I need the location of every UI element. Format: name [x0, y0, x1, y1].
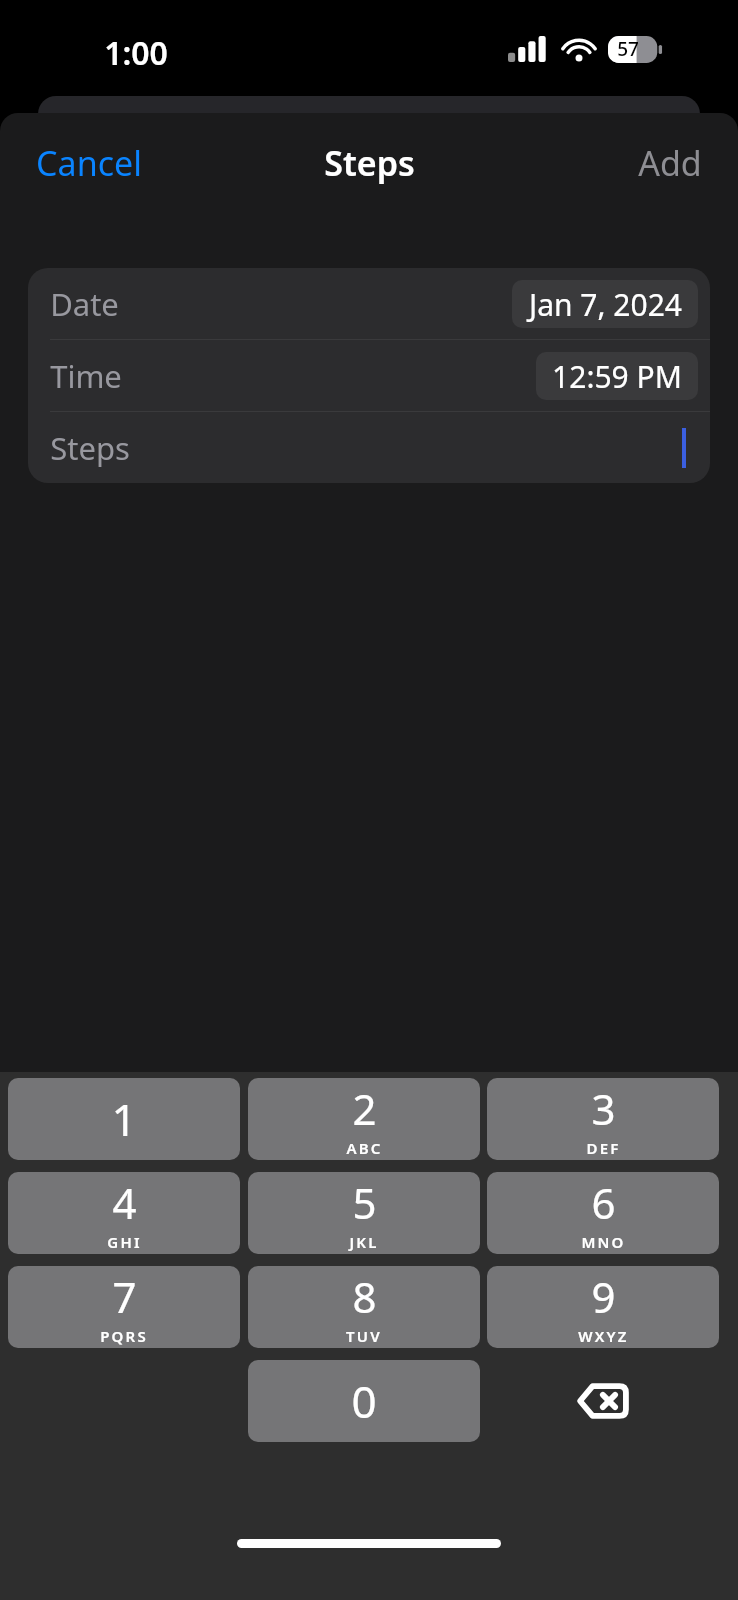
staticText: WXYZ [578, 1326, 629, 1346]
staticText: 0 [351, 1371, 377, 1431]
button[interactable]: 3 [487, 1078, 719, 1160]
staticText: 8 [352, 1268, 377, 1325]
staticText: ABC [346, 1138, 383, 1158]
staticText: 12:59 PM [552, 356, 682, 397]
staticText: 9 [591, 1268, 616, 1325]
button[interactable]: Steps [28, 412, 710, 483]
staticText: 7 [112, 1268, 137, 1325]
staticText: 1 [111, 1089, 137, 1149]
button[interactable]: 8 [248, 1266, 480, 1348]
button[interactable]: 5 [248, 1172, 480, 1254]
staticText: Steps [324, 140, 415, 186]
staticText: TUV [346, 1326, 382, 1346]
staticText: Steps [50, 427, 130, 469]
staticText: 57 [617, 36, 639, 62]
staticText: 2 [352, 1080, 377, 1137]
button[interactable]: Time [28, 340, 710, 412]
button[interactable]: 9 [487, 1266, 719, 1348]
staticText: DEF [586, 1138, 621, 1158]
button[interactable]: Add [602, 124, 738, 202]
button[interactable]: 4 [8, 1172, 240, 1254]
button[interactable]: 12:59 PM [536, 352, 698, 400]
staticText: 5 [352, 1174, 377, 1231]
staticText: 6 [591, 1174, 616, 1231]
staticText: 4 [112, 1174, 137, 1231]
staticText: 1:00 [104, 31, 168, 75]
button[interactable]: Date [28, 268, 710, 340]
staticText: Cancel [36, 140, 142, 186]
staticText: PQRS [100, 1326, 148, 1346]
button[interactable]: Cancel [0, 124, 178, 202]
button[interactable]: 6 [487, 1172, 719, 1254]
staticText: Date [50, 283, 119, 325]
staticText: 3 [591, 1080, 616, 1137]
staticText: Add [638, 140, 702, 186]
button[interactable]: 0 [248, 1360, 480, 1442]
staticText: Time [50, 355, 122, 397]
button[interactable]: 1 [8, 1078, 240, 1160]
button[interactable]: Jan 7, 2024 [512, 280, 698, 328]
button[interactable]: Delete [487, 1360, 719, 1442]
button[interactable]: 2 [248, 1078, 480, 1160]
staticText: Jan 7, 2024 [529, 284, 682, 325]
staticText: MNO [581, 1232, 626, 1252]
staticText: GHI [107, 1232, 142, 1252]
button[interactable]: 7 [8, 1266, 240, 1348]
staticText: JKL [349, 1232, 379, 1252]
